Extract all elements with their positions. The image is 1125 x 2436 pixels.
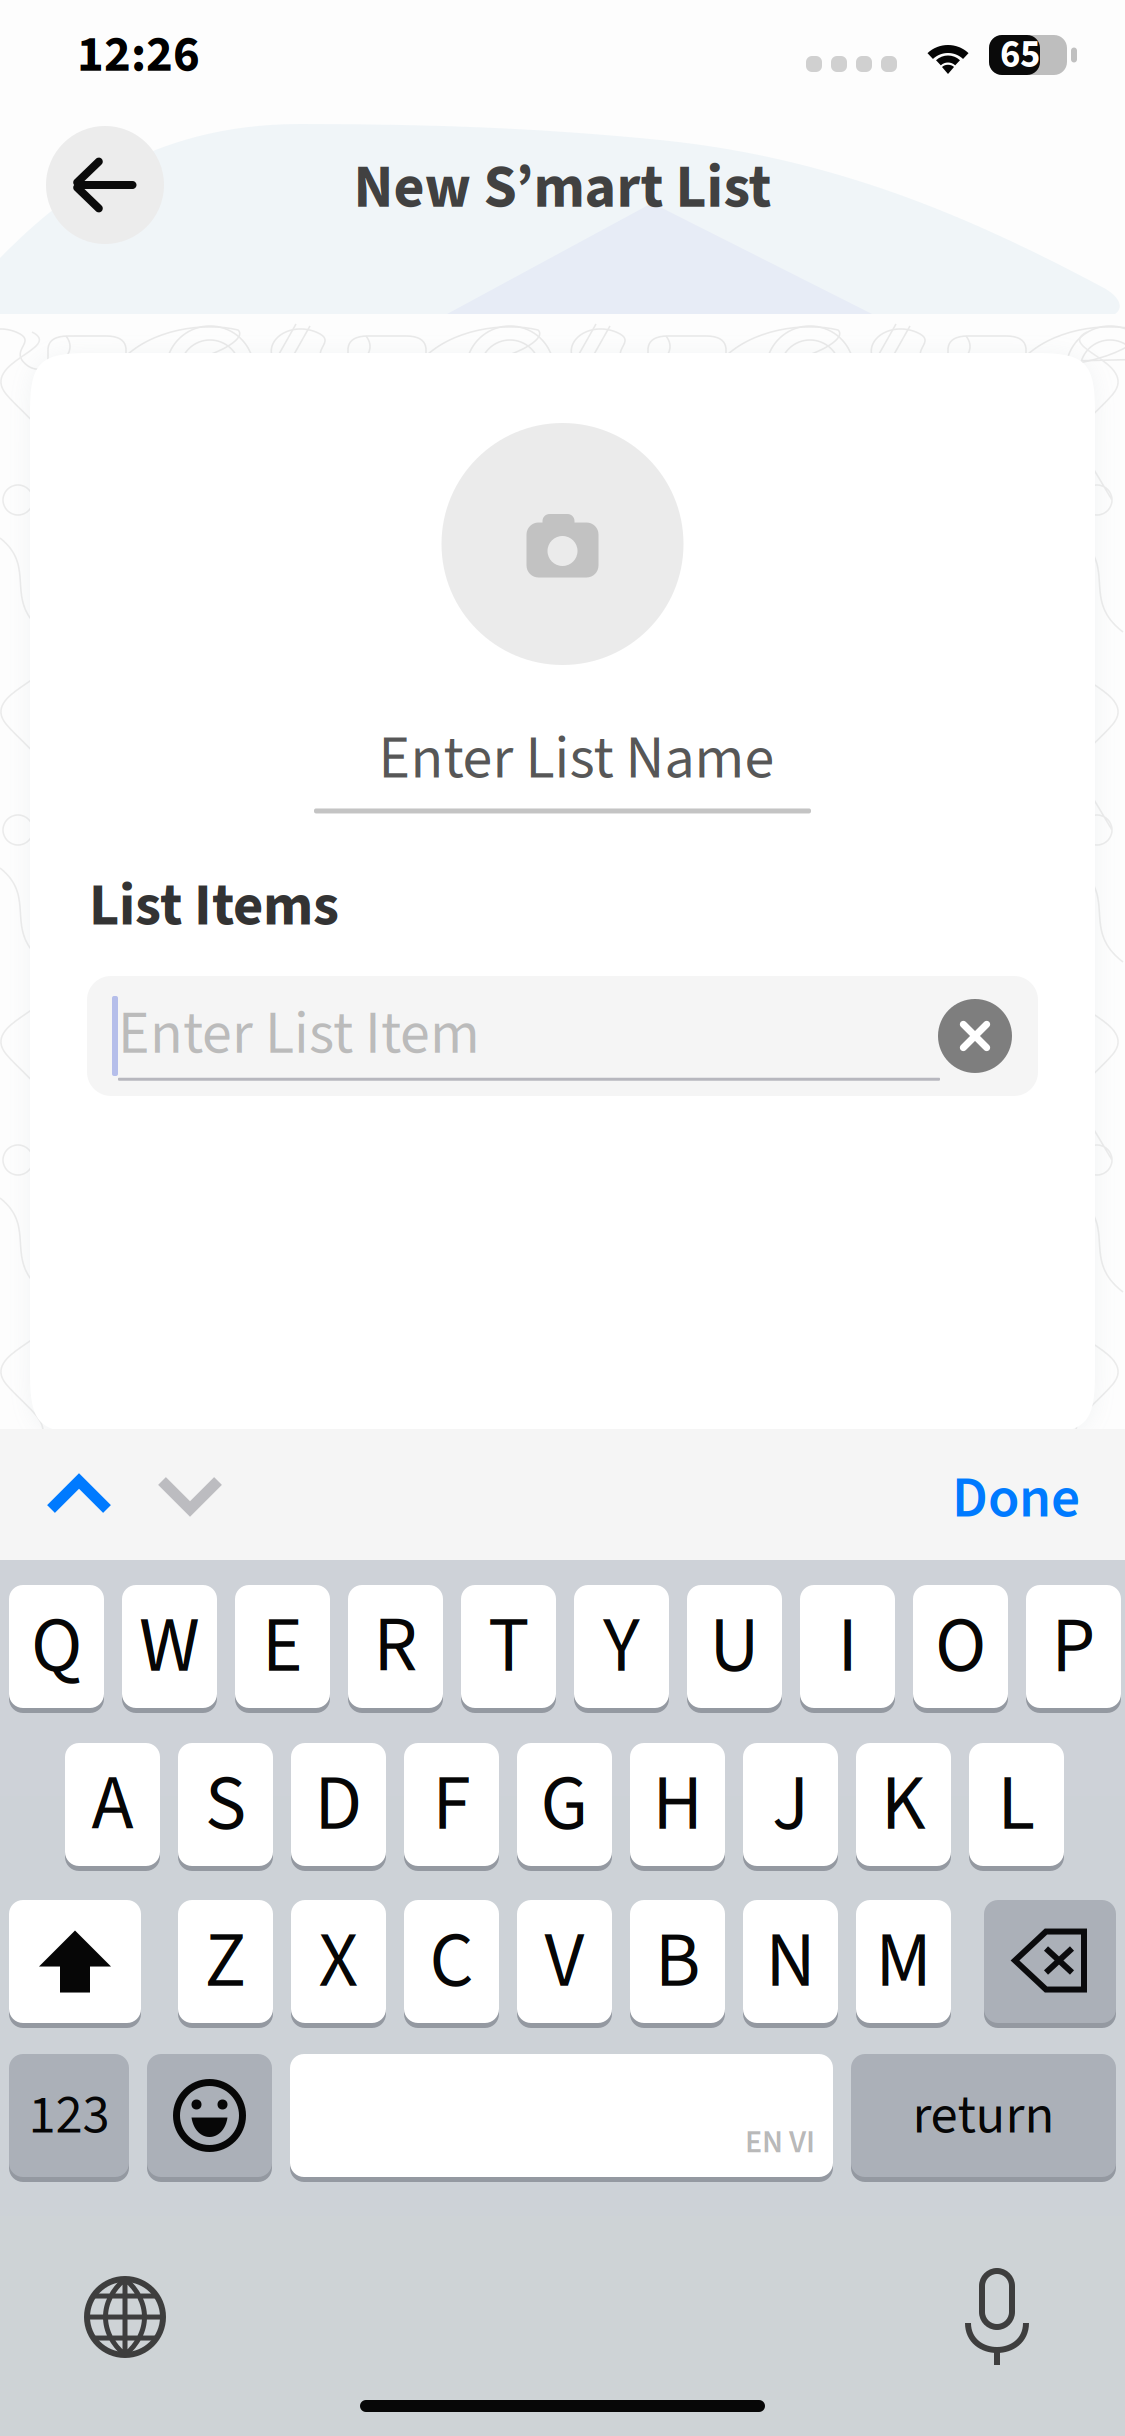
button[interactable]: T	[461, 1580, 556, 1713]
staticText: E	[262, 1591, 303, 1701]
button[interactable]: return	[851, 2049, 1116, 2182]
staticText: Q	[31, 1591, 82, 1701]
staticText: T	[488, 1591, 529, 1701]
button[interactable]: O	[913, 1580, 1008, 1713]
button[interactable]: B	[630, 1895, 725, 2028]
staticText: J	[772, 1749, 809, 1859]
staticText: X	[318, 1906, 358, 2016]
button[interactable]: Z	[178, 1895, 273, 2028]
staticText: S	[205, 1749, 246, 1859]
button[interactable]: D	[291, 1738, 386, 1871]
button[interactable]: S	[178, 1738, 273, 1871]
button[interactable]: M	[856, 1895, 951, 2028]
staticText: return	[912, 2077, 1054, 2154]
staticText: Z	[204, 1906, 246, 2016]
button[interactable]: Next keyboard	[85, 2277, 165, 2357]
staticText: D	[314, 1749, 362, 1859]
staticText: I	[837, 1591, 857, 1701]
staticText: L	[997, 1749, 1035, 1859]
staticText: C	[429, 1906, 473, 2016]
button[interactable]: Q	[9, 1580, 104, 1713]
button[interactable]: K	[856, 1738, 951, 1871]
staticText: H	[652, 1749, 702, 1859]
staticText: Y	[603, 1591, 640, 1701]
button[interactable]: Next field	[157, 1473, 223, 1517]
staticText: Done	[952, 1458, 1080, 1539]
button[interactable]: R	[348, 1580, 443, 1713]
button[interactable]: 123	[9, 2049, 129, 2182]
staticText: M	[875, 1906, 931, 2016]
button[interactable]: G	[517, 1738, 612, 1871]
button[interactable]: A	[65, 1738, 160, 1871]
staticText: P	[1051, 1591, 1095, 1701]
button[interactable]: Dictation	[964, 2266, 1030, 2368]
button[interactable]: Previous field	[46, 1473, 112, 1517]
button[interactable]: X	[291, 1895, 386, 2028]
staticText: 65	[1000, 27, 1040, 83]
staticText: EN VI	[745, 2119, 815, 2165]
button[interactable]: I	[800, 1580, 895, 1713]
button[interactable]: E	[235, 1580, 330, 1713]
button[interactable]: L	[969, 1738, 1064, 1871]
button[interactable]: J	[743, 1738, 838, 1871]
staticText: W	[139, 1591, 200, 1701]
staticText: G	[540, 1749, 588, 1859]
button[interactable]: W	[122, 1580, 217, 1713]
button[interactable]: V	[517, 1895, 612, 2028]
button[interactable]: N	[743, 1895, 838, 2028]
button[interactable]: Emoji	[147, 2049, 272, 2182]
button[interactable]: H	[630, 1738, 725, 1871]
button[interactable]: Done	[928, 1429, 1104, 1560]
button[interactable]: Delete	[984, 1895, 1116, 2028]
button[interactable]: U	[687, 1580, 782, 1713]
staticText: New S’mart List	[353, 145, 771, 231]
button[interactable]: P	[1026, 1580, 1121, 1713]
button[interactable]: Shift	[9, 1895, 141, 2028]
button[interactable]: C	[404, 1895, 499, 2028]
button[interactable]: Back	[46, 126, 164, 244]
staticText: R	[373, 1591, 417, 1701]
staticText: F	[432, 1749, 470, 1859]
button[interactable]: F	[404, 1738, 499, 1871]
staticText: 12:26	[77, 19, 200, 91]
staticText: K	[881, 1749, 926, 1859]
button[interactable]: Clear text	[938, 999, 1012, 1073]
staticText: 123	[28, 2077, 109, 2154]
staticText: U	[709, 1591, 759, 1701]
button[interactable]: Space	[290, 2049, 833, 2182]
staticText: B	[655, 1906, 700, 2016]
staticText: A	[91, 1749, 133, 1859]
staticText: Enter List Item	[118, 991, 480, 1077]
staticText: O	[935, 1591, 986, 1701]
button[interactable]: Y	[574, 1580, 669, 1713]
staticText: V	[544, 1906, 584, 2016]
staticText: Enter List Name	[378, 716, 774, 801]
staticText: List Items	[89, 864, 339, 948]
staticText: N	[765, 1906, 815, 2016]
